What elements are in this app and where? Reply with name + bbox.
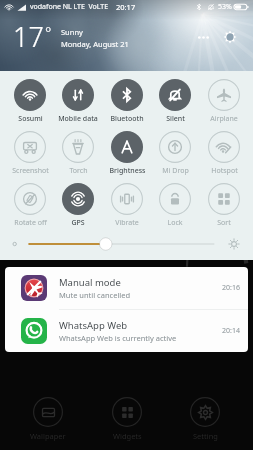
staticText: vodafone NL LTE VoLTE: [30, 2, 109, 12]
button[interactable]: Sosumi: [7, 78, 53, 125]
button[interactable]: Hotspot: [201, 130, 247, 177]
staticText: Torch: [69, 166, 88, 176]
button[interactable]: WhatsApp Web: [5, 310, 248, 352]
staticText: Bluetooth: [110, 114, 144, 124]
staticText: WhatsApp Web is currently active: [59, 333, 177, 343]
staticText: Setting: [193, 431, 218, 441]
staticText: Rotate off: [14, 218, 47, 228]
staticText: 20:17: [116, 2, 136, 12]
staticText: Manual mode: [59, 276, 121, 289]
staticText: Screenshot: [12, 166, 49, 176]
staticText: 20:16: [222, 283, 240, 293]
staticText: Wallpaper: [30, 431, 66, 441]
staticText: WhatsApp Web: [59, 319, 128, 332]
staticText: Sunny: [61, 27, 83, 37]
staticText: Airplane: [210, 114, 238, 124]
button[interactable]: Manual mode: [5, 267, 248, 309]
staticText: GPS: [71, 218, 85, 228]
button[interactable]: Settings: [219, 26, 241, 48]
button[interactable]: Setting: [174, 397, 236, 441]
staticText: Vibrate: [115, 218, 139, 228]
staticText: Sosumi: [18, 114, 43, 124]
button[interactable]: Airplane: [201, 78, 247, 125]
button[interactable]: Screenshot: [7, 130, 53, 177]
button[interactable]: Silent: [152, 78, 198, 125]
staticText: Silent: [166, 114, 185, 124]
button[interactable]: Widgets: [96, 397, 158, 441]
button[interactable]: Torch: [55, 130, 101, 177]
staticText: Brightness: [109, 166, 146, 176]
staticText: °: [45, 22, 52, 42]
staticText: 17: [13, 18, 44, 55]
button[interactable]: Mi Drop: [152, 130, 198, 177]
button[interactable]: Sort: [201, 182, 247, 229]
staticText: Sort: [217, 218, 231, 228]
button[interactable]: Wallpaper: [17, 397, 79, 441]
staticText: 20:14: [222, 326, 240, 336]
button[interactable]: GPS: [55, 182, 101, 229]
staticText: Widgets: [113, 431, 142, 441]
staticText: 53%: [218, 2, 232, 12]
button[interactable]: Lock: [152, 182, 198, 229]
button[interactable]: Bluetooth: [104, 78, 150, 125]
staticText: Mute until cancelled: [59, 290, 131, 300]
staticText: Hotspot: [211, 166, 238, 176]
button[interactable]: Brightness slider: [0, 235, 253, 253]
button[interactable]: Vibrate: [104, 182, 150, 229]
button[interactable]: Rotate off: [7, 182, 53, 229]
staticText: Lock: [167, 218, 183, 228]
button[interactable]: More options: [193, 27, 213, 47]
staticText: Mi Drop: [162, 166, 189, 176]
button[interactable]: Mobile data: [55, 78, 101, 125]
staticText: Mobile data: [58, 114, 98, 124]
staticText: Monday, August 21: [61, 39, 129, 49]
button[interactable]: Brightness: [104, 130, 150, 177]
